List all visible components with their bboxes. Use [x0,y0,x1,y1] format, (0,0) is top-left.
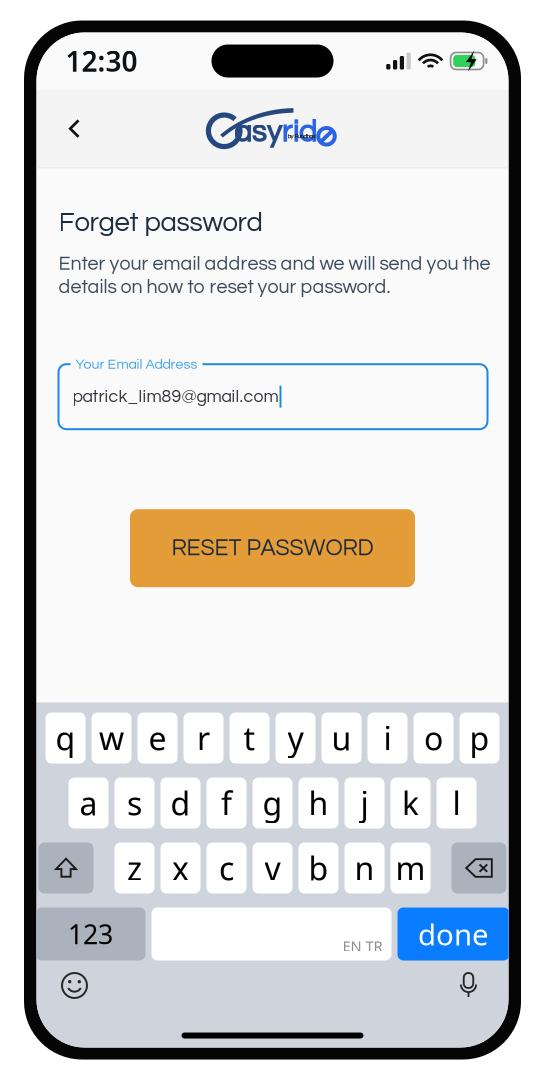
button[interactable]: k [390,777,430,828]
staticText: z [127,847,142,889]
staticText: rid [281,116,316,148]
staticText: e [148,717,166,759]
button[interactable]: y [275,712,315,763]
button[interactable]: q [45,712,85,763]
button[interactable]: j [344,777,384,828]
button[interactable]: 123 [35,907,145,960]
staticText: asy [233,116,281,148]
button[interactable]: Dictation [446,963,490,1007]
button[interactable]: x [160,842,200,893]
staticText: p [469,717,489,759]
staticText: Enter your email address and we will sen… [58,254,490,297]
button[interactable]: Back [52,106,96,150]
staticText: l [452,782,460,824]
button[interactable]: c [206,842,246,893]
button[interactable]: b [298,842,338,893]
staticText: i [383,717,391,759]
button[interactable]: Shift [38,842,93,893]
staticText: patrick_lim89@gmail.com [72,388,278,406]
button[interactable]: i [367,712,407,763]
staticText: m [395,847,425,889]
staticText: s [127,782,142,824]
button[interactable]: Emoji keyboard [52,963,96,1007]
button[interactable]: Delete [451,842,506,893]
staticText: Your Email Address [75,357,197,372]
staticText: v [264,847,280,889]
button[interactable]: a [68,777,108,828]
button[interactable]: n [344,842,384,893]
button[interactable]: h [298,777,338,828]
button[interactable]: l [436,777,476,828]
staticText: b [308,847,328,889]
staticText: d [170,782,190,824]
staticText: n [354,847,374,889]
staticText: c [219,847,234,889]
staticText: a [79,782,97,824]
staticText: 12:30 [65,42,137,80]
staticText: Forget password [58,208,262,237]
button[interactable]: p [459,712,499,763]
button[interactable]: f [206,777,246,828]
button[interactable]: RESET PASSWORD [130,509,415,587]
staticText: u [331,717,351,759]
staticText: k [402,782,419,824]
staticText: f [221,782,232,824]
staticText: j [360,782,368,824]
button[interactable]: v [252,842,292,893]
staticText: EN TR [342,936,382,955]
button[interactable]: g [252,777,292,828]
staticText: x [172,847,189,889]
button[interactable]: r [183,712,223,763]
staticText: by Fundbox [287,133,315,139]
staticText: RESET PASSWORD [171,536,373,560]
staticText: w [99,717,124,759]
staticText: y [287,717,303,759]
button[interactable]: e [137,712,177,763]
button[interactable]: d [160,777,200,828]
button[interactable]: m [390,842,430,893]
staticText: t [243,717,255,759]
staticText: h [308,782,328,824]
button[interactable]: t [229,712,269,763]
staticText: 123 [68,916,113,952]
button[interactable]: u [321,712,361,763]
button[interactable]: z [114,842,154,893]
button[interactable]: Space [151,907,391,960]
staticText: done [418,914,489,953]
staticText: o [424,717,443,759]
button[interactable]: w [91,712,131,763]
staticText: r [197,717,210,759]
button[interactable]: o [413,712,453,763]
button[interactable]: done [397,907,509,960]
button[interactable]: s [114,777,154,828]
staticText: g [262,782,282,824]
staticText: q [55,717,75,759]
